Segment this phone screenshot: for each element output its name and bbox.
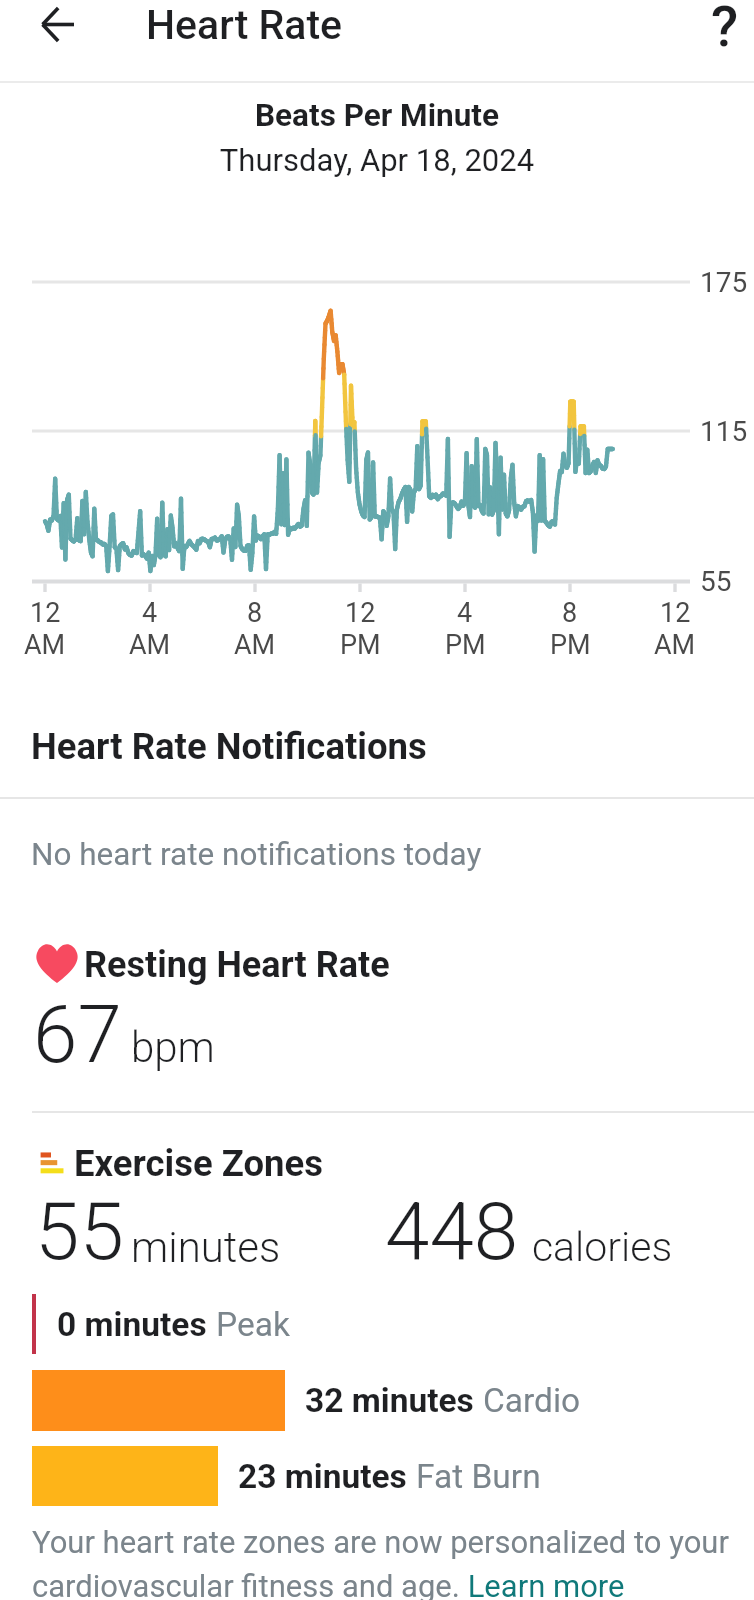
staticText: Heart Rate Notifications: [31, 725, 427, 768]
staticText: 4: [457, 597, 473, 629]
staticText: Cardio: [483, 1381, 581, 1420]
staticText: AM: [234, 629, 276, 661]
staticText: calories: [532, 1223, 673, 1271]
staticText: 12: [660, 597, 691, 629]
staticText: AM: [654, 629, 696, 661]
staticText: No heart rate notifications today: [31, 836, 482, 873]
staticText: 8: [562, 597, 578, 629]
staticText: 32 minutes: [305, 1381, 474, 1420]
staticText: Exercise Zones: [74, 1142, 323, 1185]
button[interactable]: Help: [690, 0, 754, 82]
staticText: 115: [700, 415, 748, 448]
staticText: Thursday, Apr 18, 2024: [0, 142, 754, 178]
staticText: 67: [33, 988, 122, 1082]
staticText: 4: [142, 597, 158, 629]
staticText: bpm: [131, 1023, 215, 1072]
staticText: Fat Burn: [416, 1457, 541, 1496]
staticText: PM: [340, 629, 381, 661]
staticText: 12: [30, 597, 61, 629]
staticText: 55: [700, 565, 732, 598]
staticText: Beats Per Minute: [0, 97, 754, 134]
button[interactable]: 32 minutes: [0, 1370, 754, 1431]
staticText: PM: [550, 629, 591, 661]
staticText: 55: [35, 1185, 124, 1279]
staticText: 23 minutes: [238, 1457, 407, 1496]
staticText: AM: [24, 629, 66, 661]
staticText: ?: [711, 0, 739, 60]
staticText: AM: [129, 629, 171, 661]
staticText: 175: [700, 266, 748, 299]
staticText: Resting Heart Rate: [84, 944, 390, 986]
staticText: minutes: [131, 1223, 281, 1272]
staticText: Heart Rate: [146, 1, 343, 49]
button[interactable]: 23 minutes: [0, 1446, 754, 1506]
button[interactable]: Back: [16, 0, 98, 82]
staticText: PM: [445, 629, 486, 661]
staticText: 0 minutes: [57, 1305, 207, 1344]
staticText: 12: [345, 597, 376, 629]
staticText: 8: [247, 597, 263, 629]
button[interactable]: 0 minutes: [0, 1291, 754, 1357]
staticText: Peak: [216, 1305, 290, 1344]
button[interactable]: Your heart rate zones are now personaliz…: [32, 1524, 738, 1600]
staticText: 448: [385, 1185, 519, 1279]
